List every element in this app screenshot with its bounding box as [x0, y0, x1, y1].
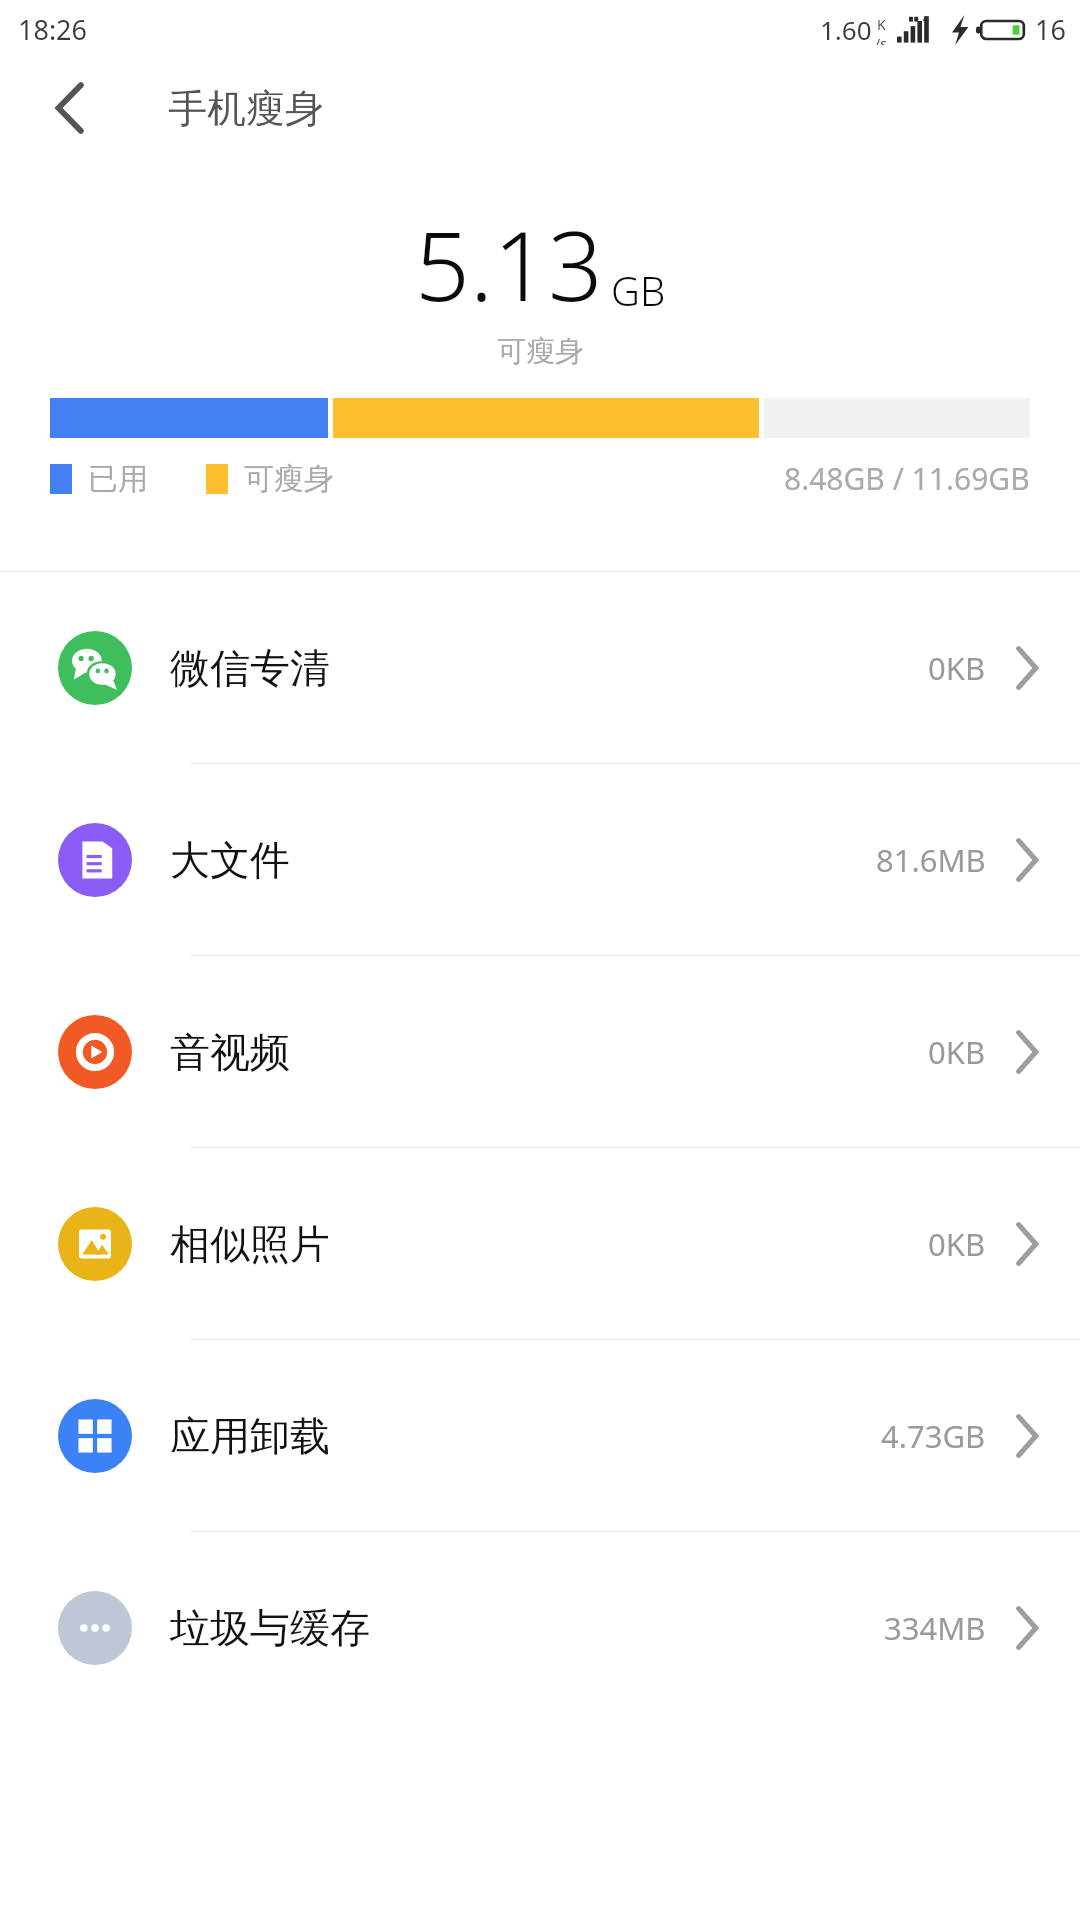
button[interactable]: Back — [34, 72, 106, 144]
staticText: 大文件 — [170, 835, 290, 885]
staticText: 16 — [1035, 11, 1066, 48]
button[interactable]: 垃圾与缓存 — [0, 1532, 1080, 1724]
staticText: 可瘦身 — [497, 333, 584, 370]
staticText: 8.48GB / 11.69GB — [784, 458, 1030, 499]
staticText: 4.73GB — [881, 1415, 986, 1457]
staticText: 0KB — [928, 1031, 986, 1073]
staticText: /s — [875, 34, 887, 45]
staticText: 应用卸载 — [170, 1411, 330, 1461]
staticText: 已用 — [88, 460, 148, 498]
staticText: 0KB — [928, 1223, 986, 1265]
button[interactable]: 微信专清 — [0, 572, 1080, 764]
staticText: 音视频 — [170, 1027, 290, 1077]
staticText: K — [877, 15, 886, 34]
staticText: 334MB — [884, 1607, 986, 1649]
staticText: 81.6MB — [876, 839, 986, 881]
staticText: 手机瘦身 — [168, 84, 324, 133]
staticText: 18:26 — [18, 11, 88, 48]
button[interactable]: 相似照片 — [0, 1148, 1080, 1340]
staticText: 垃圾与缓存 — [170, 1603, 370, 1653]
button[interactable]: 应用卸载 — [0, 1340, 1080, 1532]
staticText: 5.13 — [415, 198, 603, 329]
staticText: 微信专清 — [170, 643, 330, 693]
button[interactable]: 大文件 — [0, 764, 1080, 956]
staticText: 0KB — [928, 647, 986, 689]
staticText: GB — [611, 263, 666, 317]
staticText: 相似照片 — [170, 1219, 330, 1269]
button[interactable]: 音视频 — [0, 956, 1080, 1148]
staticText: 1.60 — [820, 12, 872, 47]
staticText: 可瘦身 — [244, 460, 334, 498]
